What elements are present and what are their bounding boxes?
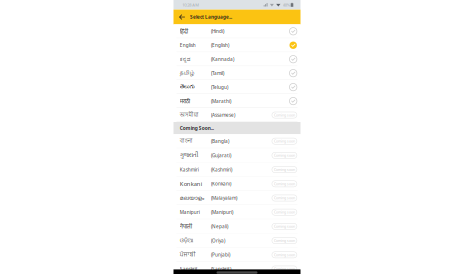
staticText: (Oriya) bbox=[211, 237, 225, 244]
staticText: English bbox=[180, 42, 196, 48]
staticText: मराठी bbox=[180, 97, 190, 105]
staticText: (Sanskrit) bbox=[211, 266, 231, 272]
staticText: 48% bbox=[283, 2, 290, 8]
staticText: (Malayalam) bbox=[211, 195, 237, 201]
staticText: Coming soon bbox=[274, 153, 295, 158]
button[interactable]: Kashmiri bbox=[173, 162, 300, 177]
staticText: Coming soon bbox=[274, 224, 295, 229]
button[interactable]: Manipuri bbox=[173, 205, 300, 219]
button[interactable]: ଓଡ଼ିଆ bbox=[173, 233, 300, 248]
button[interactable]: தமிழ் bbox=[173, 66, 300, 80]
staticText: Coming soon bbox=[274, 167, 295, 172]
staticText: Coming soon bbox=[274, 210, 295, 214]
staticText: Kashmiri bbox=[180, 166, 199, 173]
button[interactable]: ગુજરાતી bbox=[173, 148, 300, 162]
staticText: ਪੰਜਾਬੀ bbox=[180, 252, 196, 258]
staticText: Coming soon bbox=[274, 113, 295, 117]
staticText: অসমীয়া bbox=[180, 111, 199, 119]
staticText: नेपाली bbox=[180, 222, 192, 230]
staticText: ગુજરાતી bbox=[180, 152, 199, 158]
staticText: 10:28 AM bbox=[182, 2, 199, 8]
staticText: Coming soon bbox=[274, 267, 295, 271]
staticText: বাংলা bbox=[180, 137, 193, 145]
staticText: (Hindi) bbox=[211, 28, 224, 34]
staticText: தமிழ் bbox=[180, 70, 195, 77]
staticText: (Tamil) bbox=[211, 70, 224, 76]
button[interactable]: हिंदी bbox=[173, 24, 300, 38]
staticText: (Punjabi) bbox=[211, 252, 230, 258]
staticText: Select Language... bbox=[190, 14, 232, 20]
button[interactable]: বাংলা bbox=[173, 134, 300, 148]
staticText: (Bangla) bbox=[211, 138, 229, 144]
staticText: (Marathi) bbox=[211, 98, 231, 104]
button[interactable]: ਪੰਜਾਬੀ bbox=[173, 248, 300, 262]
button[interactable]: Back bbox=[178, 13, 185, 20]
staticText: Coming soon bbox=[274, 139, 295, 143]
staticText: (Gujarati) bbox=[211, 152, 231, 159]
staticText: Coming Soon... bbox=[180, 125, 214, 131]
staticText: हिंदी bbox=[180, 27, 188, 35]
staticText: (English) bbox=[211, 42, 229, 48]
staticText: (Manipuri) bbox=[211, 209, 233, 215]
button[interactable]: नेपाली bbox=[173, 219, 300, 233]
staticText: (Assamese) bbox=[211, 112, 235, 118]
staticText: മലയാളം bbox=[180, 195, 204, 201]
staticText: Konkani bbox=[180, 180, 202, 188]
staticText: (Kannada) bbox=[211, 56, 234, 62]
button[interactable]: ಕನ್ನಡ bbox=[173, 52, 300, 66]
button[interactable]: Konkani bbox=[173, 177, 300, 191]
staticText: Sanskrit bbox=[180, 266, 198, 272]
button[interactable]: मराठी bbox=[173, 94, 300, 108]
staticText: ଓଡ଼ିଆ bbox=[180, 238, 194, 243]
staticText: ಕನ್ನಡ bbox=[180, 56, 191, 62]
button[interactable]: অসমীয়া bbox=[173, 108, 300, 122]
button[interactable]: മലയാളം bbox=[173, 191, 300, 205]
staticText: తెలుగు bbox=[180, 83, 195, 91]
staticText: Coming soon bbox=[274, 196, 295, 200]
staticText: (Nepali) bbox=[211, 223, 228, 230]
staticText: (Telugu) bbox=[211, 84, 228, 90]
staticText: Coming soon bbox=[274, 252, 295, 257]
staticText: Coming soon bbox=[274, 181, 295, 186]
button[interactable]: Sanskrit bbox=[173, 262, 300, 274]
button[interactable]: English bbox=[173, 38, 300, 52]
button[interactable]: తెలుగు bbox=[173, 80, 300, 94]
staticText: (Konkani) bbox=[211, 181, 231, 187]
staticText: (Kashmiri) bbox=[211, 166, 232, 173]
staticText: Manipuri bbox=[180, 209, 200, 215]
staticText: Coming soon bbox=[274, 238, 295, 243]
